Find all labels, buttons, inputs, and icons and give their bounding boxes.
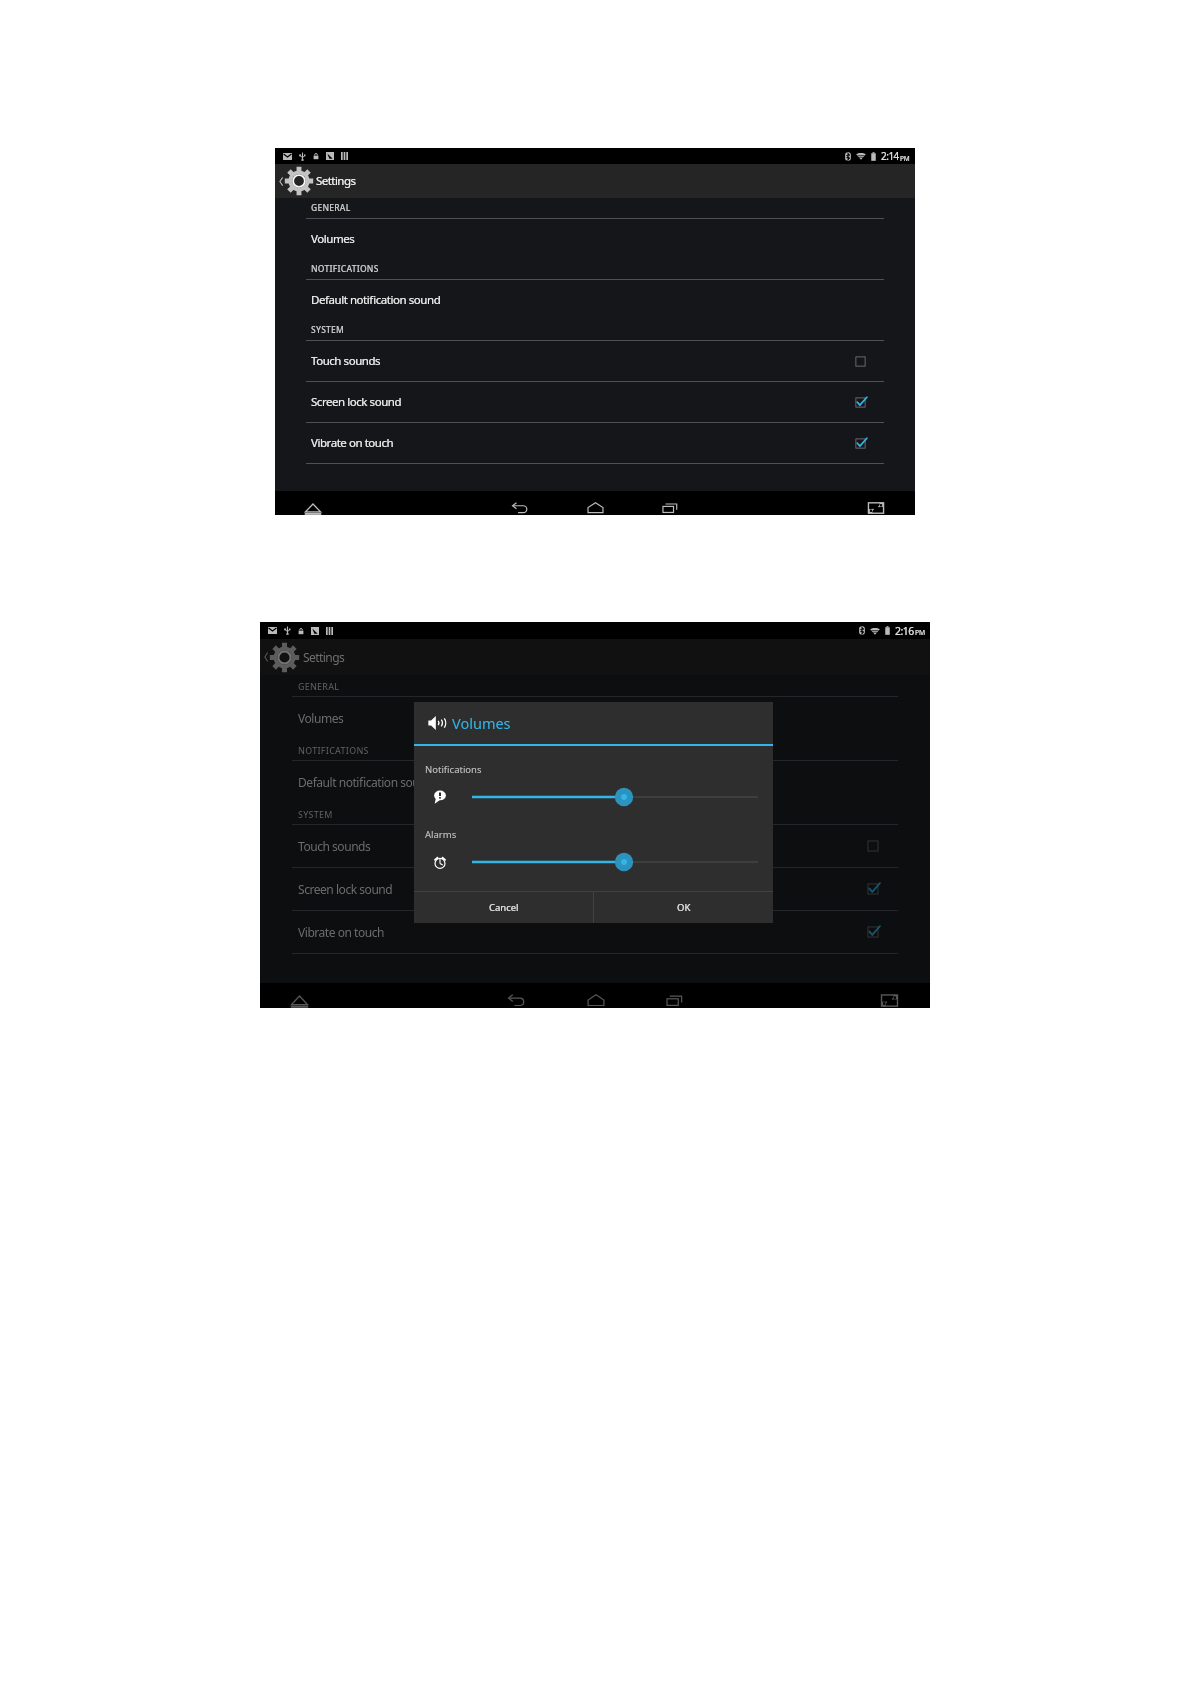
button[interactable]: Screenshot: [880, 992, 899, 1007]
staticText: Default notification sound: [311, 292, 441, 308]
button[interactable]: Vibrate on touch: [260, 911, 930, 954]
staticText: Settings: [303, 649, 345, 665]
button[interactable]: Touch sounds: [260, 825, 930, 868]
button[interactable]: Back: [507, 991, 526, 1006]
staticText: PM: [915, 628, 925, 637]
staticText: PM: [900, 154, 910, 163]
button[interactable]: Screen lock sound: [260, 868, 930, 911]
button[interactable]: Up: [290, 994, 309, 1008]
button[interactable]: Home: [586, 499, 604, 513]
staticText: 2:14: [881, 149, 899, 163]
staticText: GENERAL: [298, 680, 340, 692]
button[interactable]: Settings: [275, 164, 915, 198]
staticText: Alarms: [425, 828, 457, 841]
button[interactable]: Screenshot: [867, 500, 885, 514]
staticText: Volumes: [452, 713, 511, 733]
staticText: Notifications: [425, 763, 482, 776]
button[interactable]: Back: [511, 499, 529, 513]
staticText: Default notification sound: [298, 774, 434, 790]
staticText: NOTIFICATIONS: [311, 263, 379, 275]
staticText: Touch sounds: [311, 353, 381, 369]
button[interactable]: Recents: [665, 991, 684, 1006]
button[interactable]: Default notification sound: [275, 280, 915, 320]
button[interactable]: Volumes: [275, 219, 915, 259]
staticText: Cancel: [489, 901, 519, 914]
button[interactable]: Screen lock sound: [275, 382, 915, 423]
staticText: Volumes: [311, 231, 355, 247]
staticText: Screen lock sound: [311, 394, 402, 410]
button[interactable]: Up: [304, 502, 322, 515]
staticText: Vibrate on touch: [298, 924, 385, 940]
button[interactable]: Volumes: [260, 697, 930, 739]
button[interactable]: Vibrate on touch: [275, 423, 915, 464]
button[interactable]: Touch sounds: [275, 341, 915, 382]
button[interactable]: OK: [594, 892, 773, 923]
button[interactable]: Home: [586, 991, 605, 1006]
button[interactable]: Default notification sound: [260, 761, 930, 803]
staticText: Volumes: [298, 710, 344, 726]
staticText: Touch sounds: [298, 838, 371, 854]
staticText: SYSTEM: [298, 808, 333, 820]
staticText: Settings: [316, 173, 356, 189]
button[interactable]: Settings: [260, 639, 930, 675]
staticText: OK: [677, 901, 691, 914]
button[interactable]: Recents: [661, 499, 679, 513]
button[interactable]: Notifications volume: [414, 786, 773, 808]
staticText: 2:16: [895, 624, 914, 638]
staticText: GENERAL: [311, 202, 351, 214]
staticText: SYSTEM: [311, 324, 345, 336]
staticText: NOTIFICATIONS: [298, 744, 369, 756]
button[interactable]: Cancel: [414, 892, 593, 923]
staticText: Vibrate on touch: [311, 435, 394, 451]
staticText: Screen lock sound: [298, 881, 393, 897]
button[interactable]: Alarms volume: [414, 851, 773, 873]
